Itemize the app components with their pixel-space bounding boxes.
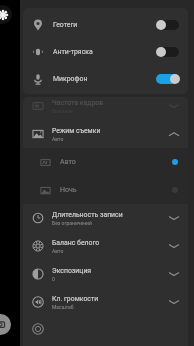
staticText: Режим съемки — [52, 127, 101, 135]
button[interactable]: Баланс белого — [23, 232, 188, 260]
staticText: Авто — [52, 248, 64, 254]
button[interactable]: Settings — [0, 5, 12, 24]
staticText: Авто — [52, 136, 64, 142]
button[interactable]: More — [23, 316, 188, 341]
button[interactable]: Режим съемки — [23, 120, 188, 148]
staticText: Ночь — [60, 186, 77, 194]
button[interactable]: Gallery — [0, 314, 11, 335]
staticText: Высокое — [52, 108, 73, 114]
button[interactable]: Экспозиция — [23, 260, 188, 288]
staticText: Анти-тряска — [53, 48, 93, 56]
button[interactable]: Частота кадров — [23, 97, 188, 120]
staticText: Геотеги — [53, 21, 78, 29]
button[interactable]: Микрофон — [23, 65, 188, 92]
button[interactable]: Геотеги — [23, 11, 188, 38]
staticText: Частота кадров — [52, 99, 104, 107]
button[interactable]: Длительность записи — [23, 204, 188, 232]
staticText: 0 — [52, 276, 55, 282]
staticText: Баланс белого — [52, 239, 100, 247]
button[interactable]: Кл. громкости — [23, 288, 188, 316]
staticText: Длительность записи — [52, 211, 123, 219]
staticText: Кл. громкости — [52, 295, 99, 303]
button[interactable]: Анти-тряска — [23, 38, 188, 65]
staticText: Без ограничений — [52, 220, 92, 226]
staticText: Микрофон — [53, 75, 88, 83]
button[interactable]: Авто — [23, 148, 188, 176]
staticText: Масштаб — [52, 304, 74, 310]
button[interactable]: Ночь — [23, 176, 188, 204]
other: More — [32, 323, 44, 335]
staticText: Авто — [60, 158, 76, 166]
staticText: Экспозиция — [52, 267, 92, 275]
